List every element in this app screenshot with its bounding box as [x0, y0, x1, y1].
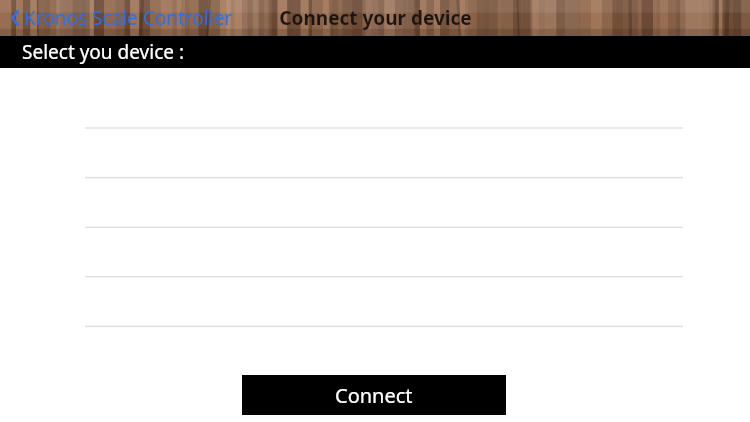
staticText: Kronos Scale Controller	[24, 5, 233, 31]
button[interactable]	[0, 177, 750, 226]
button[interactable]: Back	[6, 3, 235, 33]
other: Back	[8, 7, 22, 29]
staticText: Select you device :	[22, 39, 184, 65]
button[interactable]	[0, 226, 750, 275]
button[interactable]: Connect	[242, 375, 506, 415]
button[interactable]	[0, 275, 750, 324]
staticText: Connect	[335, 382, 413, 409]
staticText: Connect your device	[279, 5, 472, 31]
